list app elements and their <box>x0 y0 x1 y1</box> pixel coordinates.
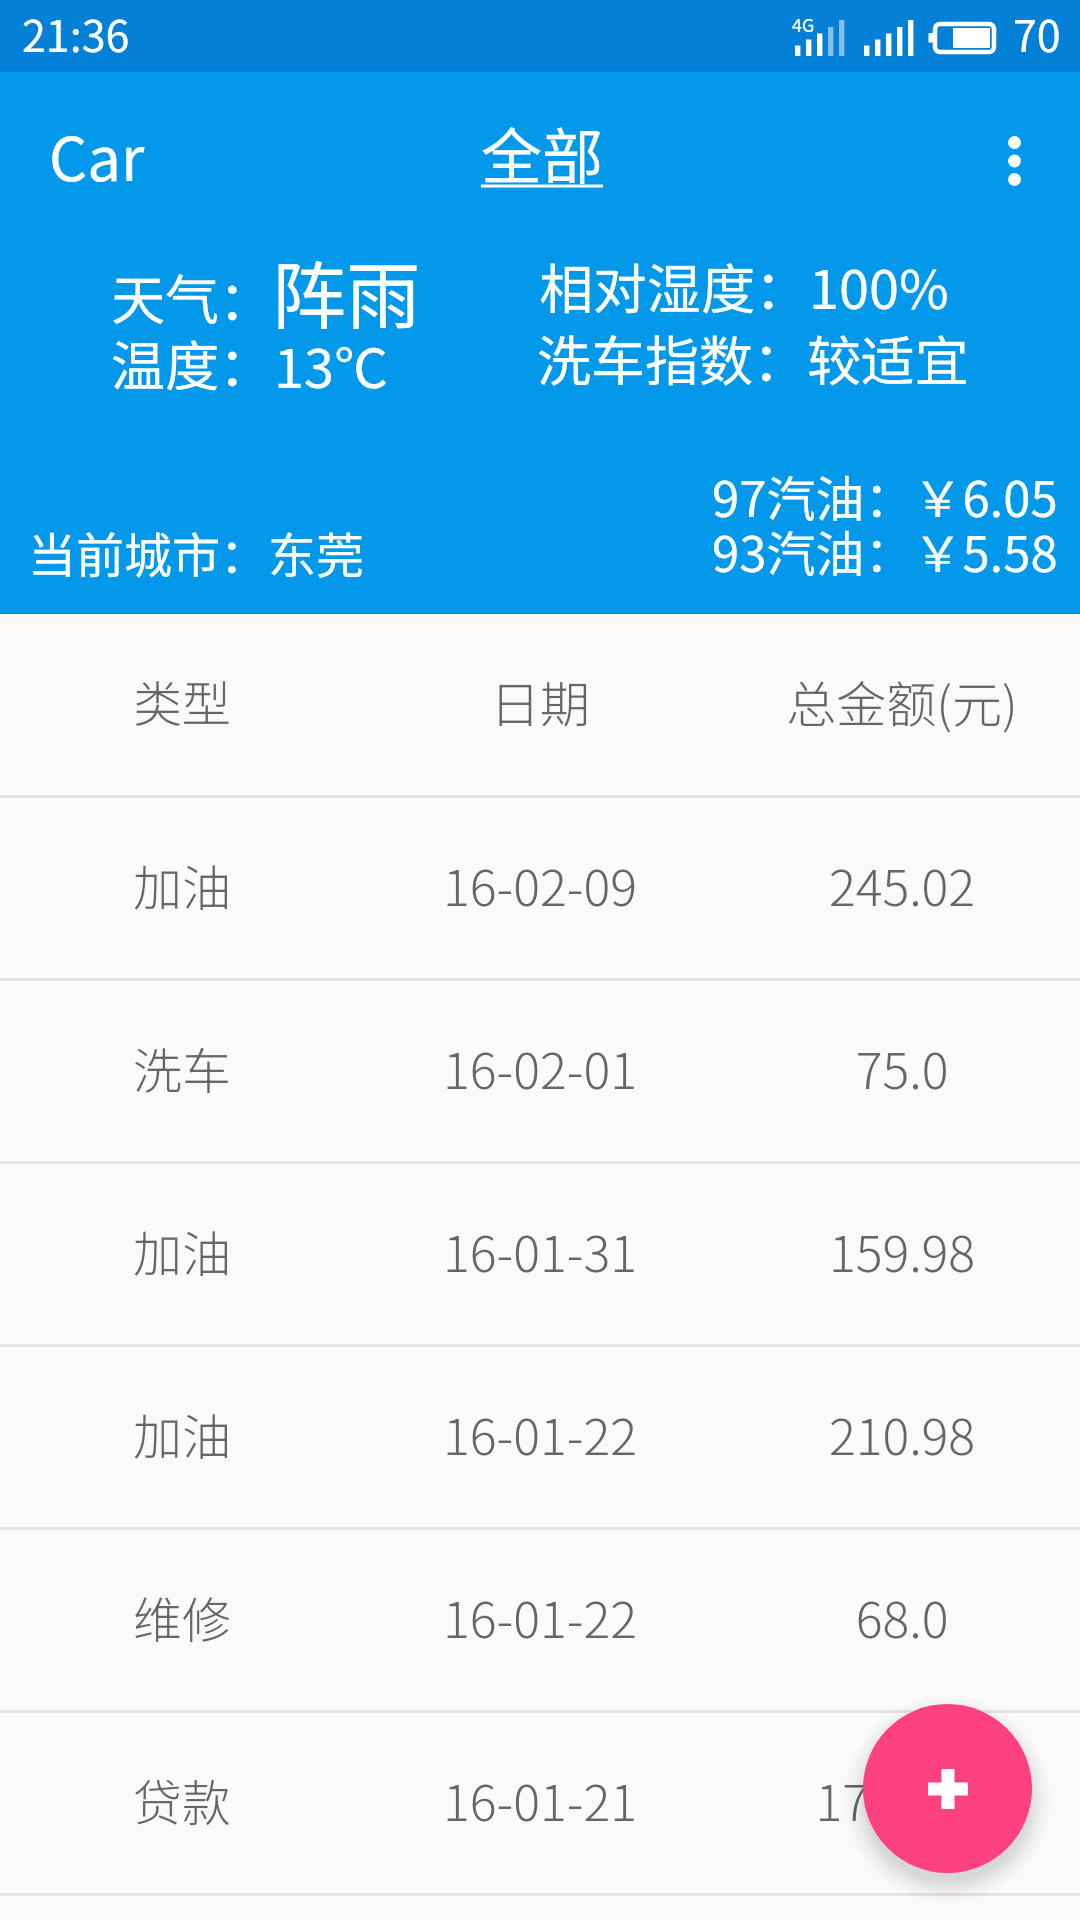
staticText: 93汽油：￥5.58 <box>712 515 1058 586</box>
staticText: 16-02-01 <box>360 1031 720 1103</box>
staticText: 洗车指数：较适宜 <box>537 318 969 396</box>
staticText: 70 <box>1013 2 1061 64</box>
staticText: 16-01-31 <box>360 1214 720 1286</box>
staticText: 温度： <box>111 323 273 401</box>
staticText: 21:36 <box>22 2 130 64</box>
staticText: 75.0 <box>722 1031 1080 1103</box>
staticText: 加油 <box>2 1215 362 1286</box>
staticText: 加油 <box>2 1398 362 1469</box>
staticText: 总金额(元) <box>722 665 1080 737</box>
staticText: 维修 <box>2 1581 362 1652</box>
staticText: 16-02-09 <box>360 848 720 920</box>
staticText: 类型 <box>2 665 362 736</box>
button[interactable]: More options <box>960 107 1068 215</box>
staticText: 17000.0 <box>722 1763 1080 1835</box>
staticText: 加油 <box>2 849 362 920</box>
staticText: 16-01-21 <box>360 1763 720 1835</box>
button[interactable]: 加油 <box>0 1164 1080 1347</box>
button[interactable]: 加油 <box>0 1347 1080 1530</box>
staticText: Car <box>49 111 145 198</box>
button[interactable]: 维修 <box>0 1530 1080 1713</box>
staticText: 68.0 <box>722 1580 1080 1652</box>
button[interactable]: 类型 <box>0 614 1080 798</box>
staticText: 日期 <box>360 665 720 737</box>
staticText: 当前城市：东莞 <box>28 517 365 587</box>
staticText: 阵雨 <box>272 237 420 344</box>
button[interactable]: Add record <box>863 1704 1032 1873</box>
staticText: 210.98 <box>722 1397 1080 1469</box>
staticText: 贷款 <box>2 1764 362 1835</box>
button[interactable]: 贷款 <box>0 1713 1080 1896</box>
staticText: 相对湿度：100% <box>539 246 949 324</box>
staticText: 245.02 <box>722 848 1080 920</box>
staticText: 天气： <box>111 257 273 335</box>
staticText: 97汽油：￥6.05 <box>712 460 1058 531</box>
staticText: 16-01-22 <box>360 1397 720 1469</box>
button[interactable]: 全部 <box>459 105 630 237</box>
button[interactable]: 洗车 <box>0 981 1080 1164</box>
button[interactable]: Car <box>30 114 170 245</box>
staticText: 4G <box>792 11 815 37</box>
staticText: 全部 <box>481 108 604 196</box>
button[interactable]: 加油 <box>0 798 1080 981</box>
staticText: 洗车 <box>2 1032 362 1103</box>
staticText: 159.98 <box>722 1214 1080 1286</box>
staticText: 13℃ <box>274 325 388 403</box>
staticText: 16-01-22 <box>360 1580 720 1652</box>
